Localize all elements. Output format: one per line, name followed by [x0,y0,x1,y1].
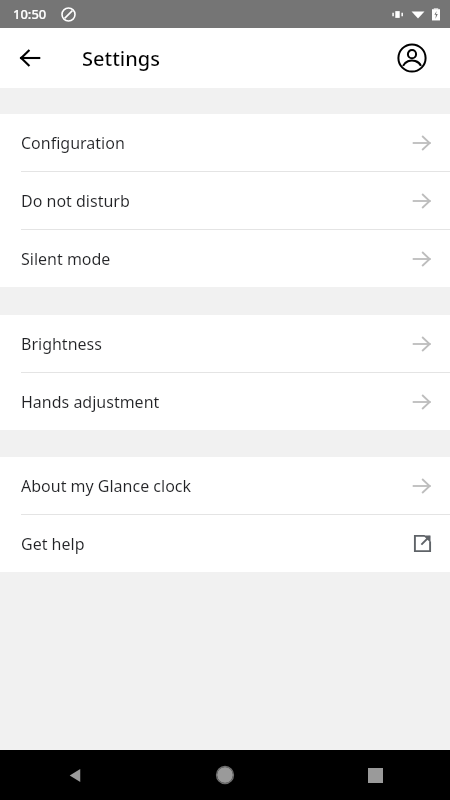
button[interactable]: Silent mode [0,230,450,287]
staticText: Get help [21,533,413,555]
button[interactable]: Brightness [0,315,450,372]
button[interactable]: Recents [300,750,450,800]
staticText: 10:50 [13,5,47,23]
staticText: Do not disturb [21,190,412,212]
button[interactable]: Get help [0,515,450,572]
staticText: Hands adjustment [21,391,412,413]
staticText: Configuration [21,132,412,154]
button[interactable]: Back [0,750,150,800]
staticText: About my Glance clock [21,475,412,497]
staticText: Brightness [21,333,412,355]
button[interactable]: Configuration [0,114,450,171]
button[interactable]: Hands adjustment [0,373,450,430]
button[interactable]: About my Glance clock [0,457,450,514]
staticText: Silent mode [21,248,412,270]
button[interactable]: Home [150,750,300,800]
staticText: Settings [82,45,160,72]
button[interactable]: Back [10,38,50,78]
button[interactable]: Do not disturb [0,172,450,229]
button[interactable]: Account [392,38,432,78]
